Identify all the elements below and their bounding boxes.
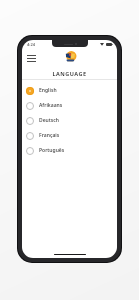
staticText: Afrikaans: [39, 102, 63, 109]
staticText: Português: [39, 147, 65, 154]
button[interactable]: Afrikaans: [22, 98, 117, 113]
staticText: 4:24: [27, 42, 35, 47]
staticText: Deutsch: [39, 117, 59, 124]
staticText: English: [39, 87, 57, 94]
button[interactable]: Open navigation menu: [24, 51, 38, 65]
button[interactable]: Português: [22, 143, 117, 158]
button[interactable]: English: [22, 83, 117, 98]
button[interactable]: Français: [22, 128, 117, 143]
staticText: Français: [39, 132, 60, 139]
button[interactable]: Deutsch: [22, 113, 117, 128]
staticText: LANGUAGE: [52, 70, 87, 77]
